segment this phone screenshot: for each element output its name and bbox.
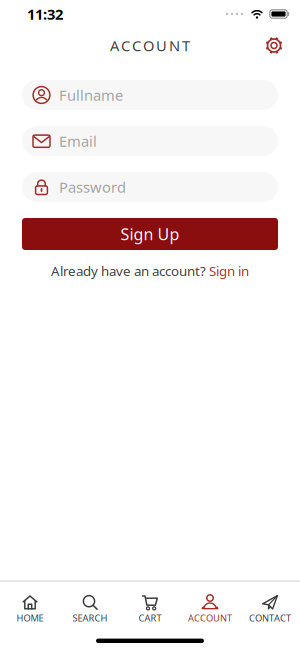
button[interactable]: Password xyxy=(22,172,278,202)
staticText: Fullname xyxy=(59,85,123,105)
staticText: Email xyxy=(59,131,97,151)
staticText: Password xyxy=(59,177,126,197)
staticText: CONTACT xyxy=(249,612,291,624)
button[interactable]: Sign Up xyxy=(22,218,278,250)
staticText: Sign Up xyxy=(120,223,179,245)
button[interactable]: Settings xyxy=(263,34,285,56)
staticText: A C C O U N T xyxy=(110,36,190,55)
staticText: ACCOUNT xyxy=(188,612,232,624)
staticText: CART xyxy=(138,612,161,624)
button[interactable]: Fullname xyxy=(22,80,278,110)
button[interactable]: CART xyxy=(120,590,180,624)
staticText: Sign in xyxy=(209,262,249,280)
staticText: Already have an account? xyxy=(51,262,206,280)
staticText: SEARCH xyxy=(72,612,107,624)
button[interactable]: SEARCH xyxy=(60,590,120,624)
button[interactable]: Email xyxy=(22,126,278,156)
button[interactable]: Sign in xyxy=(209,262,249,280)
button[interactable]: HOME xyxy=(0,590,60,624)
button[interactable]: ACCOUNT xyxy=(180,590,240,624)
staticText: HOME xyxy=(16,612,43,624)
button[interactable]: CONTACT xyxy=(240,590,300,624)
staticText: 11:32 xyxy=(27,4,63,24)
